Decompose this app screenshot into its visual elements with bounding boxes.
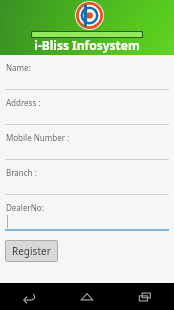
- staticText: Address :: [6, 97, 41, 108]
- button[interactable]: Back: [0, 283, 58, 310]
- staticText: DealerNo:: [6, 202, 44, 213]
- button[interactable]: Recents: [116, 283, 174, 310]
- button[interactable]: Mobile Number :: [0, 125, 174, 160]
- button[interactable]: DealerNo:: [0, 195, 174, 231]
- button[interactable]: Home: [58, 283, 116, 310]
- staticText: i-Bliss Infosystem: [34, 37, 140, 53]
- button[interactable]: Name:: [0, 55, 174, 90]
- staticText: Branch :: [6, 167, 37, 178]
- staticText: Name:: [6, 62, 31, 73]
- staticText: Register: [12, 244, 51, 258]
- button[interactable]: Address :: [0, 90, 174, 125]
- button[interactable]: Branch :: [0, 160, 174, 195]
- staticText: Mobile Number :: [6, 132, 70, 143]
- button[interactable]: Register: [5, 240, 58, 262]
